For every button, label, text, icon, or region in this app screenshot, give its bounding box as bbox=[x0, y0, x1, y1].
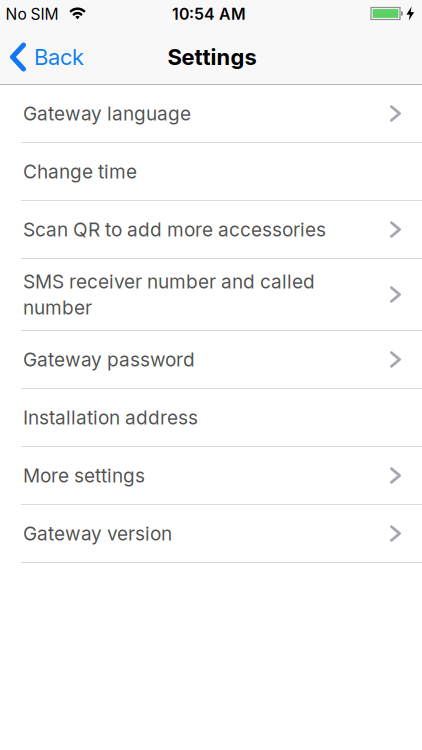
staticText: More settings bbox=[23, 464, 145, 487]
staticText: No SIM bbox=[5, 5, 58, 23]
staticText: Change time bbox=[23, 160, 137, 183]
staticText: number bbox=[23, 296, 92, 319]
button[interactable]: Back bbox=[0, 26, 90, 84]
button[interactable]: Installation address bbox=[0, 389, 422, 447]
staticText: 10:54 AM bbox=[172, 4, 246, 24]
staticText: Back bbox=[34, 44, 84, 70]
staticText: SMS receiver number and called bbox=[23, 270, 315, 293]
staticText: Settings bbox=[167, 44, 256, 70]
staticText: Scan QR to add more accessories bbox=[23, 218, 326, 241]
staticText: Gateway language bbox=[23, 102, 191, 125]
button[interactable]: More settings bbox=[0, 447, 422, 505]
button[interactable]: Gateway password bbox=[0, 331, 422, 389]
staticText: Installation address bbox=[23, 406, 198, 429]
button[interactable]: Scan QR to add more accessories bbox=[0, 201, 422, 259]
button[interactable]: Gateway language bbox=[0, 85, 422, 143]
button[interactable]: Gateway version bbox=[0, 505, 422, 563]
staticText: Gateway password bbox=[23, 348, 195, 371]
staticText: Gateway version bbox=[23, 522, 172, 545]
button[interactable]: Change time bbox=[0, 143, 422, 201]
button[interactable]: SMS receiver number and called bbox=[0, 259, 422, 331]
